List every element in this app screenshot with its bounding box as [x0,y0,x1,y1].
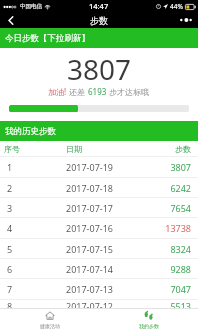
button[interactable]: More options [174,12,198,28]
staticText: 9288 [152,263,191,275]
button[interactable]: 6 [0,259,198,278]
staticText: 7654 [152,202,191,214]
staticText: 我的步数 [139,323,159,329]
button[interactable]: Back [0,12,22,28]
staticText: 加油! [48,86,67,97]
staticText: 5 [7,243,66,255]
staticText: 2017-07-13 [66,283,152,295]
staticText: 2017-07-12 [66,300,152,308]
staticText: 2017-07-14 [66,263,152,275]
button[interactable]: 3 [0,198,198,217]
staticText: 2017-07-16 [66,222,152,234]
button[interactable]: 2 [0,178,198,197]
staticText: 6242 [152,182,191,194]
staticText: 步数 [90,15,108,26]
staticText: 今日步数【下拉刷新】 [5,33,90,44]
staticText: 2 [7,182,66,194]
staticText: 2017-07-17 [66,202,152,214]
staticText: 我的历史步数 [5,126,56,137]
staticText: 中国电信 [20,3,42,10]
staticText: 14:47 [89,1,109,11]
button[interactable]: 8 [0,300,198,308]
staticText: 7 [7,283,66,295]
button[interactable]: 我的步数 [99,309,198,330]
staticText: 6 [7,263,66,275]
staticText: 步数 [152,144,191,154]
staticText: 8 [7,300,66,308]
staticText: 健康活动 [40,323,60,329]
staticText: 4 [7,222,66,234]
staticText: 8324 [152,243,191,255]
staticText: 序号 [4,144,66,154]
staticText: 1 [7,161,66,173]
staticText: 3 [7,202,66,214]
button[interactable]: 5 [0,239,198,258]
staticText: 步才达标哦 [107,86,150,97]
staticText: 2017-07-18 [66,182,152,194]
staticText: 日期 [66,144,152,154]
staticText: 3807 [67,50,132,88]
staticText: 还差 [67,86,88,97]
staticText: 2017-07-15 [66,243,152,255]
button[interactable]: 健康活动 [0,309,99,330]
button[interactable]: 7 [0,279,198,299]
button[interactable]: 4 [0,218,198,238]
staticText: 6193 [88,86,107,97]
staticText: 44% [170,2,183,11]
staticText: 7047 [152,283,191,295]
staticText: 3807 [152,161,191,173]
button[interactable]: 1 [0,157,198,177]
staticText: 13738 [152,222,191,234]
staticText: 2017-07-19 [66,161,152,173]
staticText: 5513 [152,300,191,308]
